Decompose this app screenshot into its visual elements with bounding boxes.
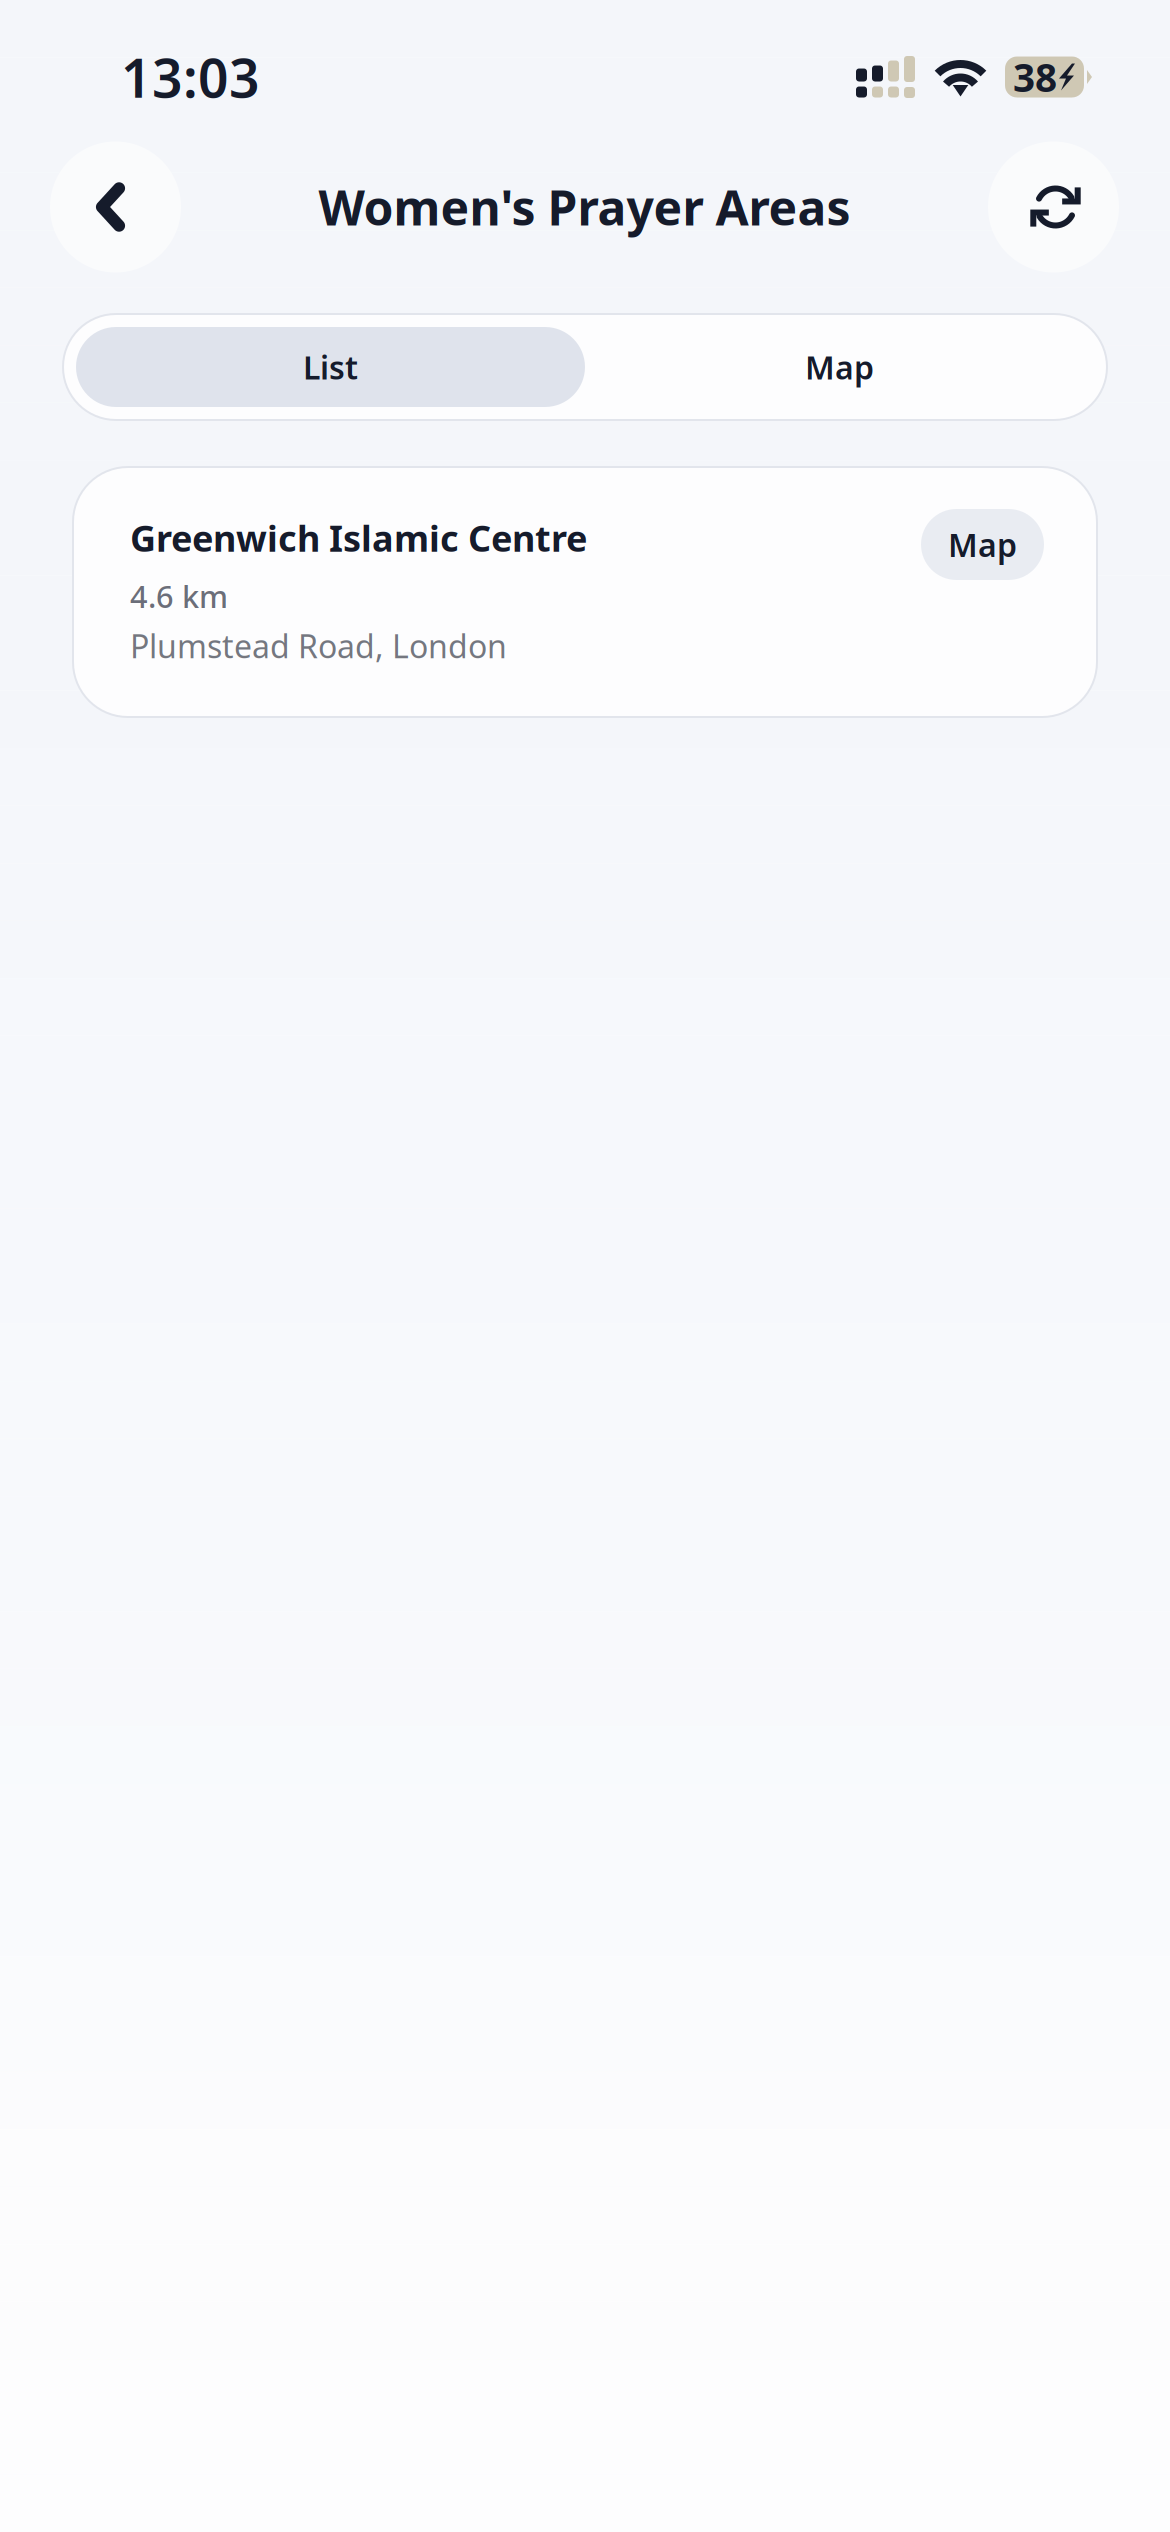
staticText: Plumstead Road, London [130, 624, 507, 667]
button[interactable]: List [76, 327, 585, 407]
button[interactable]: Back [50, 141, 181, 272]
staticText: Greenwich Islamic Centre [130, 514, 587, 562]
button[interactable]: Refresh [988, 141, 1119, 272]
staticText: 13:03 [121, 42, 260, 112]
staticText: 38 [1013, 51, 1057, 103]
button[interactable]: Map [585, 327, 1094, 407]
staticText: Women's Prayer Areas [318, 175, 850, 239]
staticText: Map [805, 346, 874, 388]
staticText: List [303, 346, 358, 388]
staticText: Map [948, 523, 1017, 566]
staticText: 4.6 km [130, 576, 228, 616]
button[interactable]: Greenwich Islamic Centre [73, 467, 1097, 717]
